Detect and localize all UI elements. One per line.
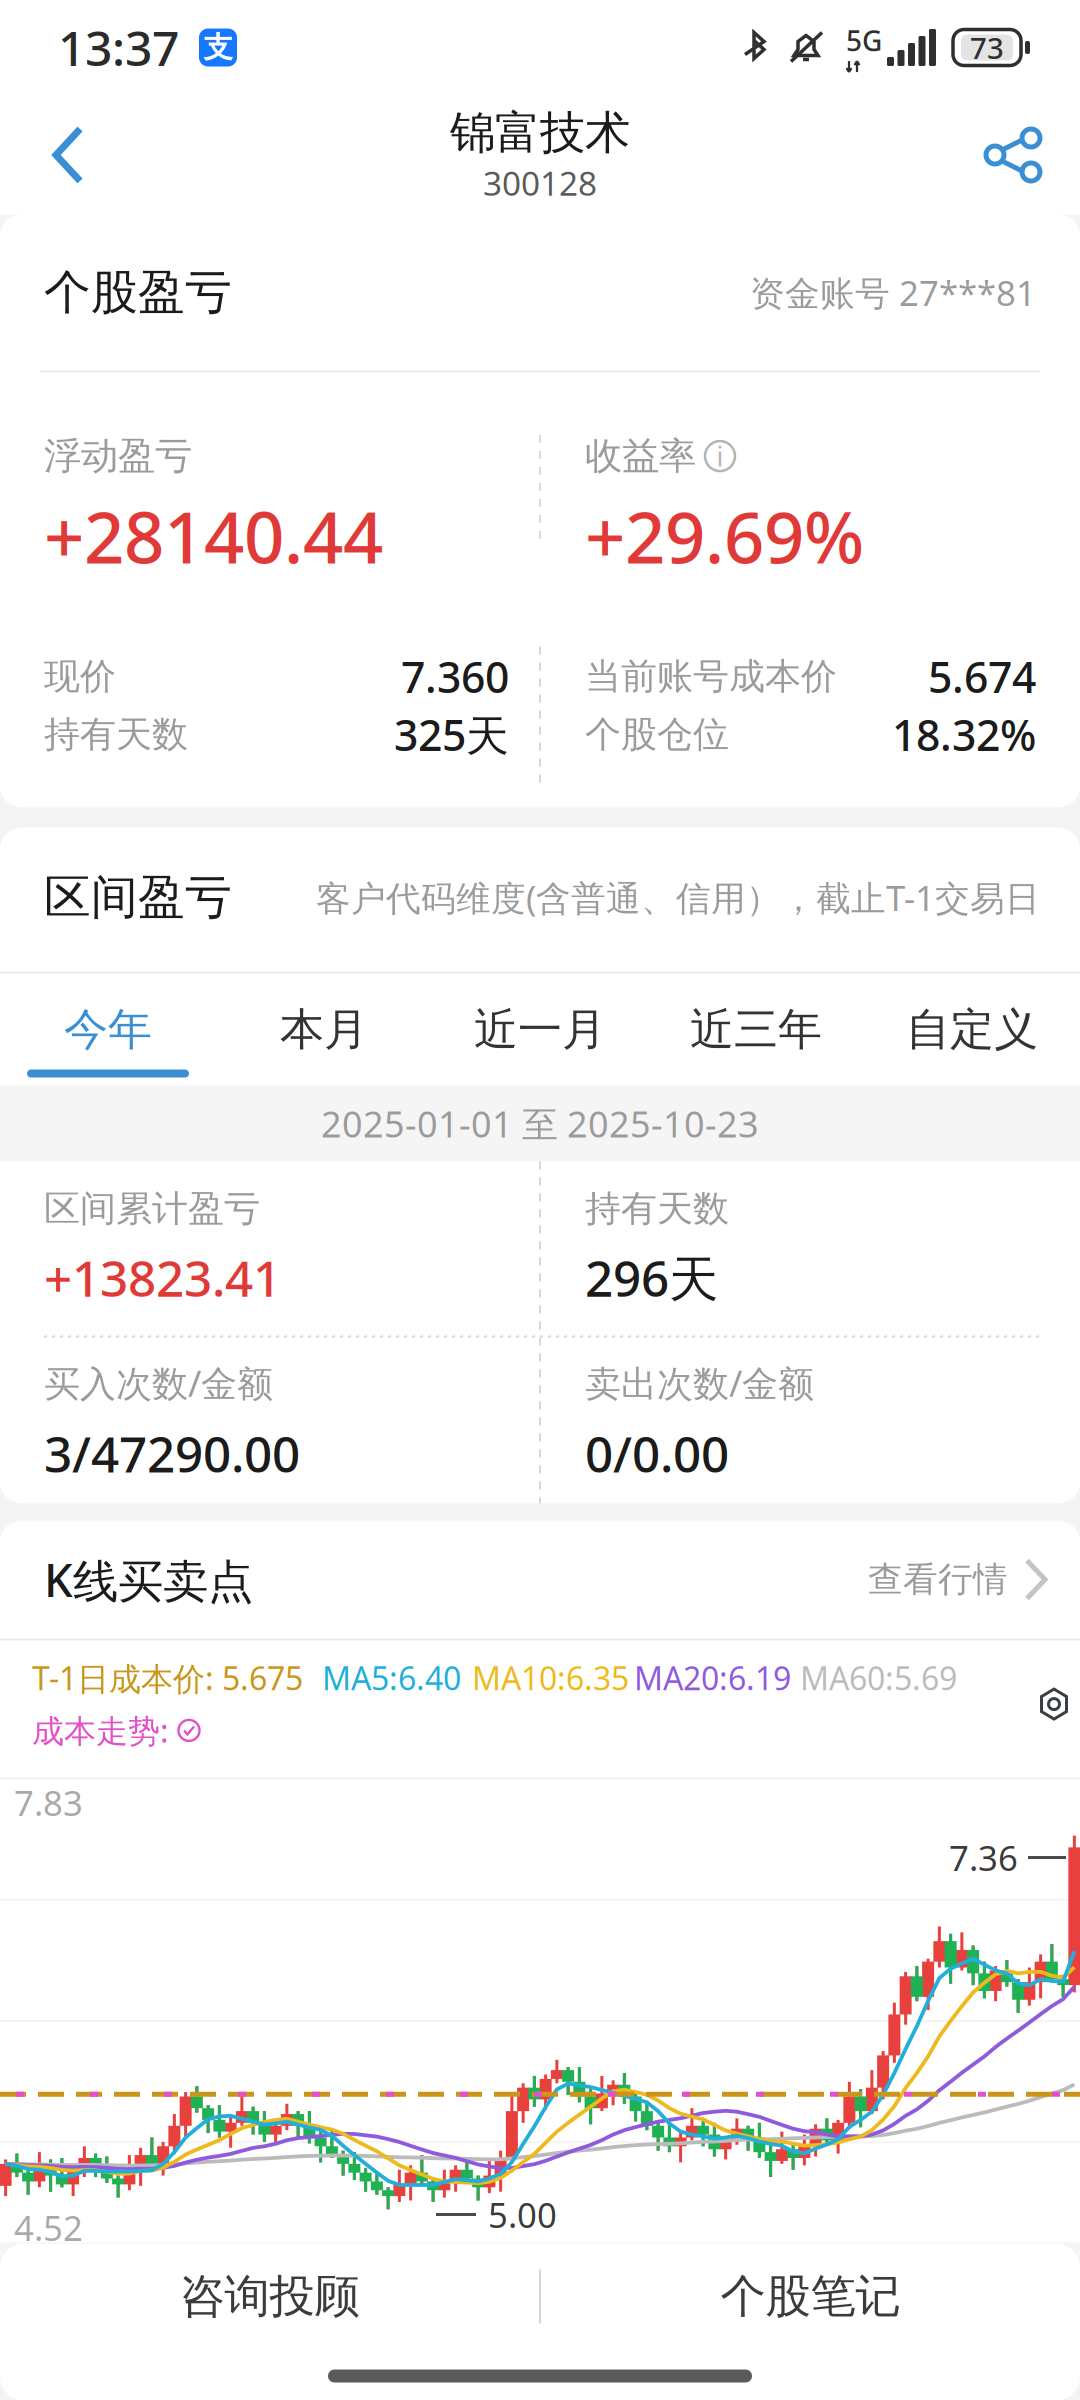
staticText: 7.360 (401, 648, 509, 705)
button[interactable]: 自定义 (864, 973, 1080, 1085)
button[interactable]: Share (956, 96, 1072, 214)
staticText: 现价 (44, 654, 116, 699)
staticText: 18.32% (892, 706, 1036, 763)
button[interactable]: Back (10, 96, 126, 214)
staticText: MA20:6.19 (634, 1657, 791, 1699)
button[interactable]: 本月 (216, 973, 432, 1085)
button[interactable]: 咨询投顾 (0, 2243, 539, 2349)
button[interactable]: 今年 (0, 973, 216, 1085)
staticText: 自定义 (906, 1002, 1038, 1056)
staticText: 浮动盈亏 (44, 433, 192, 479)
staticText: 查看行情 (868, 1558, 1008, 1601)
staticText: 客户代码维度(含普通、信用），截止T-1交易日 (316, 874, 1040, 920)
staticText: 成本走势: (32, 1709, 169, 1752)
staticText: 区间累计盈亏 (44, 1187, 260, 1231)
staticText: 5G (846, 22, 882, 59)
staticText: 卖出次数/金额 (585, 1359, 814, 1407)
staticText: +29.69% (585, 489, 864, 583)
staticText: 本月 (280, 1002, 368, 1056)
staticText: MA10:6.35 (472, 1657, 629, 1699)
staticText: 区间盈亏 (44, 869, 232, 926)
staticText: 资金账号 27***81 (750, 269, 1036, 315)
staticText: 5.674 (928, 648, 1036, 705)
staticText: K线买卖点 (44, 1549, 253, 1610)
staticText: 300128 (483, 161, 597, 205)
staticText: 296天 (585, 1245, 718, 1310)
staticText: 7.83 (14, 1779, 83, 1825)
staticText: 0/0.00 (585, 1421, 729, 1486)
staticText: 个股仓位 (585, 712, 729, 757)
staticText: MA5:6.40 (322, 1657, 461, 1699)
staticText: 2025-01-01 至 2025-10-23 (321, 1100, 759, 1147)
staticText: +28140.44 (44, 489, 383, 583)
staticText: 近三年 (690, 1002, 822, 1056)
staticText: 13:37 (58, 16, 179, 79)
staticText: i (716, 438, 723, 474)
staticText: 3/47290.00 (44, 1421, 300, 1486)
staticText: 持有天数 (44, 712, 188, 757)
staticText: 73 (970, 28, 1004, 67)
staticText: 325天 (394, 706, 509, 763)
button[interactable]: K线买卖点 (0, 1520, 1080, 1638)
button[interactable]: 近三年 (648, 973, 864, 1085)
staticText: 个股盈亏 (44, 264, 232, 321)
staticText: 锦富技术 (450, 105, 630, 161)
staticText: 买入次数/金额 (44, 1359, 273, 1407)
staticText: 4.52 (14, 2204, 83, 2250)
button[interactable]: 个股笔记 (541, 2243, 1080, 2349)
staticText: 个股笔记 (720, 2269, 900, 2324)
staticText: 7.36 (949, 1834, 1018, 1880)
staticText: MA60:5.69 (800, 1657, 957, 1699)
staticText: 收益率 (585, 433, 696, 479)
staticText: 当前账号成本价 (585, 654, 837, 699)
staticText: 5.00 (488, 2191, 557, 2237)
staticText: T-1日成本价: 5.675 (32, 1656, 303, 1699)
staticText: +13823.41 (44, 1245, 281, 1310)
staticText: 今年 (64, 1002, 152, 1056)
button[interactable]: Chart settings (1028, 1671, 1080, 1737)
staticText: 持有天数 (585, 1187, 729, 1231)
staticText: 近一月 (474, 1002, 606, 1056)
button[interactable]: 近一月 (432, 973, 648, 1085)
staticText: 支 (203, 29, 232, 65)
staticText: 咨询投顾 (179, 2269, 359, 2324)
